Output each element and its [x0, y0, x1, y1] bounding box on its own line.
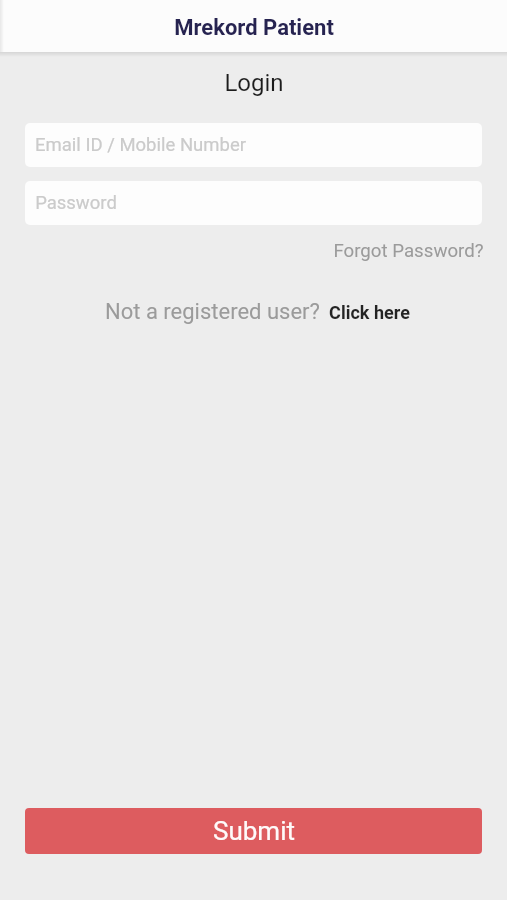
staticText: Submit [213, 816, 295, 846]
staticText: Not a registered user? [105, 299, 320, 325]
button[interactable]: Forgot Password? [331, 238, 486, 264]
staticText: Mrekord Patient [174, 15, 334, 41]
button[interactable]: Submit [25, 808, 482, 854]
staticText: Email ID / Mobile Number [35, 134, 246, 156]
staticText: Forgot Password? [333, 240, 484, 262]
button[interactable]: Email ID / Mobile Number [25, 123, 482, 167]
button[interactable]: Password [25, 181, 482, 225]
button[interactable]: Click here [327, 300, 412, 325]
staticText: Click here [329, 302, 410, 323]
staticText: Login [224, 69, 284, 97]
staticText: Password [35, 192, 117, 214]
